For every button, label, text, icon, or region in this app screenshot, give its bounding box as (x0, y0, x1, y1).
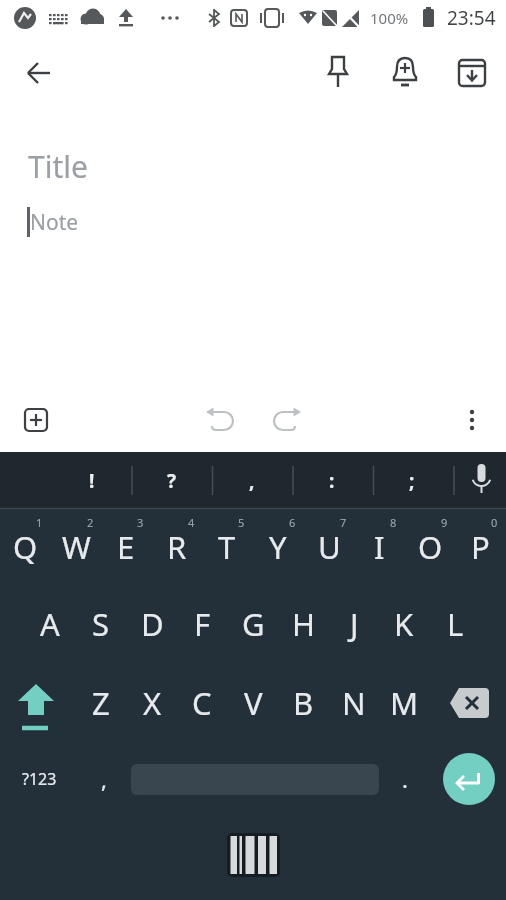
staticText: Note (30, 208, 79, 237)
button[interactable]: L (430, 589, 480, 659)
button[interactable]: M (379, 668, 429, 738)
button[interactable]: , (226, 452, 278, 509)
staticText: W (62, 526, 91, 568)
staticText: Title (28, 146, 88, 184)
staticText: 7 (340, 515, 347, 530)
button[interactable]: Q (0, 512, 50, 582)
button[interactable]: R (152, 512, 202, 582)
button[interactable]: I (354, 512, 404, 582)
button[interactable]: D (127, 589, 177, 659)
staticText: T (218, 526, 236, 568)
staticText: 6 (289, 515, 296, 530)
button[interactable]: H (278, 589, 328, 659)
staticText: 100% (370, 8, 409, 28)
button[interactable]: : (306, 452, 358, 509)
staticText: P (471, 526, 490, 568)
staticText: B (293, 682, 314, 724)
button[interactable]: Title (28, 146, 228, 184)
button[interactable] (8, 668, 64, 738)
staticText: 5 (238, 515, 245, 530)
button[interactable]: Z (76, 668, 126, 738)
button[interactable]: F (177, 589, 227, 659)
staticText: Q (13, 526, 38, 568)
button[interactable] (263, 398, 307, 442)
staticText: 4 (188, 515, 195, 530)
staticText: D (141, 603, 164, 645)
staticText: : (329, 468, 335, 494)
button[interactable]: W (51, 512, 101, 582)
staticText: 9 (441, 515, 448, 530)
button[interactable]: U (304, 512, 354, 582)
staticText: J (350, 603, 359, 645)
button[interactable]: , (80, 747, 128, 811)
staticText: V (244, 682, 263, 724)
button[interactable]: ; (386, 452, 438, 509)
button[interactable]: ? (146, 452, 198, 509)
button[interactable]: ! (66, 452, 118, 509)
button[interactable]: G (228, 589, 278, 659)
button[interactable]: O (405, 512, 455, 582)
staticText: E (117, 526, 135, 568)
staticText: 23:54 (447, 5, 496, 31)
button[interactable]: A (25, 589, 75, 659)
staticText: ! (89, 468, 95, 494)
staticText: G (242, 603, 265, 645)
staticText: ?123 (22, 768, 57, 790)
button[interactable]: N (329, 668, 379, 738)
staticText: K (394, 603, 414, 645)
staticText: ? (167, 468, 177, 494)
button[interactable]: E (101, 512, 151, 582)
button[interactable]: V (228, 668, 278, 738)
staticText: ; (409, 468, 415, 494)
button[interactable] (440, 668, 500, 738)
button[interactable]: S (76, 589, 126, 659)
staticText: Z (92, 682, 110, 724)
button[interactable] (381, 49, 429, 97)
staticText: 8 (390, 515, 397, 530)
staticText: A (40, 603, 60, 645)
button[interactable]: Y (253, 512, 303, 582)
staticText: N (342, 682, 366, 724)
staticText: O (418, 526, 443, 568)
staticText: Y (269, 526, 287, 568)
button[interactable] (450, 398, 494, 442)
staticText: 1 (36, 515, 43, 530)
staticText: , (101, 764, 107, 794)
button[interactable] (14, 398, 58, 442)
button[interactable] (443, 753, 495, 805)
staticText: C (192, 682, 212, 724)
staticText: F (194, 603, 211, 645)
button[interactable]: C (177, 668, 227, 738)
button[interactable]: Note (30, 207, 190, 237)
button[interactable]: X (127, 668, 177, 738)
staticText: H (292, 603, 315, 645)
staticText: . (402, 764, 408, 794)
button[interactable]: P (455, 512, 505, 582)
button[interactable]: ?123 (10, 747, 68, 811)
staticText: L (447, 603, 464, 645)
staticText: 0 (491, 515, 498, 530)
staticText: X (143, 682, 162, 724)
staticText: R (167, 526, 187, 568)
staticText: S (92, 603, 110, 645)
button[interactable] (314, 49, 362, 97)
staticText: , (249, 468, 255, 494)
staticText: 3 (137, 515, 144, 530)
button[interactable] (200, 398, 244, 442)
button[interactable] (15, 49, 63, 97)
button[interactable] (448, 49, 496, 97)
button[interactable]: K (379, 589, 429, 659)
staticText: 2 (87, 515, 94, 530)
button[interactable]: T (202, 512, 252, 582)
button[interactable]: . (382, 747, 428, 811)
staticText: M (390, 682, 419, 724)
button[interactable]: J (329, 589, 379, 659)
button[interactable]: B (278, 668, 328, 738)
staticText: U (318, 526, 341, 568)
staticText: I (374, 526, 385, 568)
